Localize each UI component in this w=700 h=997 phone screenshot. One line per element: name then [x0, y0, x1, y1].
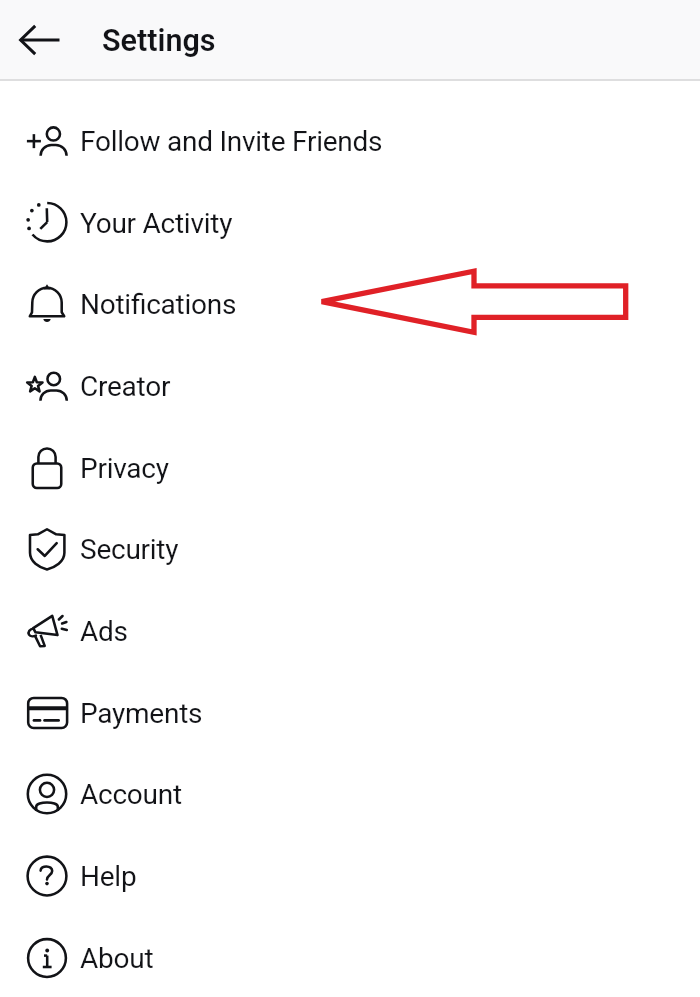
staticText: Creator	[80, 370, 171, 403]
button[interactable]: Notifications	[0, 263, 700, 345]
button[interactable]: Follow and Invite Friends	[0, 100, 700, 182]
staticText: Help	[80, 860, 137, 893]
staticText: Your Activity	[80, 207, 233, 240]
button[interactable]: Help	[0, 835, 700, 917]
staticText: Privacy	[80, 452, 169, 485]
staticText: Notifications	[80, 288, 237, 321]
staticText: Payments	[80, 697, 203, 730]
button[interactable]: Back	[8, 8, 72, 72]
button[interactable]: Ads	[0, 590, 700, 672]
button[interactable]: Payments	[0, 672, 700, 754]
staticText: Ads	[80, 615, 128, 648]
button[interactable]: Creator	[0, 345, 700, 427]
button[interactable]: Account	[0, 753, 700, 835]
staticText: Security	[80, 533, 179, 566]
staticText: Settings	[102, 23, 216, 59]
staticText: About	[80, 942, 154, 975]
button[interactable]: Security	[0, 508, 700, 590]
button[interactable]: Your Activity	[0, 182, 700, 264]
button[interactable]: About	[0, 917, 700, 997]
button[interactable]: Privacy	[0, 427, 700, 509]
staticText: Account	[80, 778, 182, 811]
staticText: Follow and Invite Friends	[80, 125, 383, 158]
